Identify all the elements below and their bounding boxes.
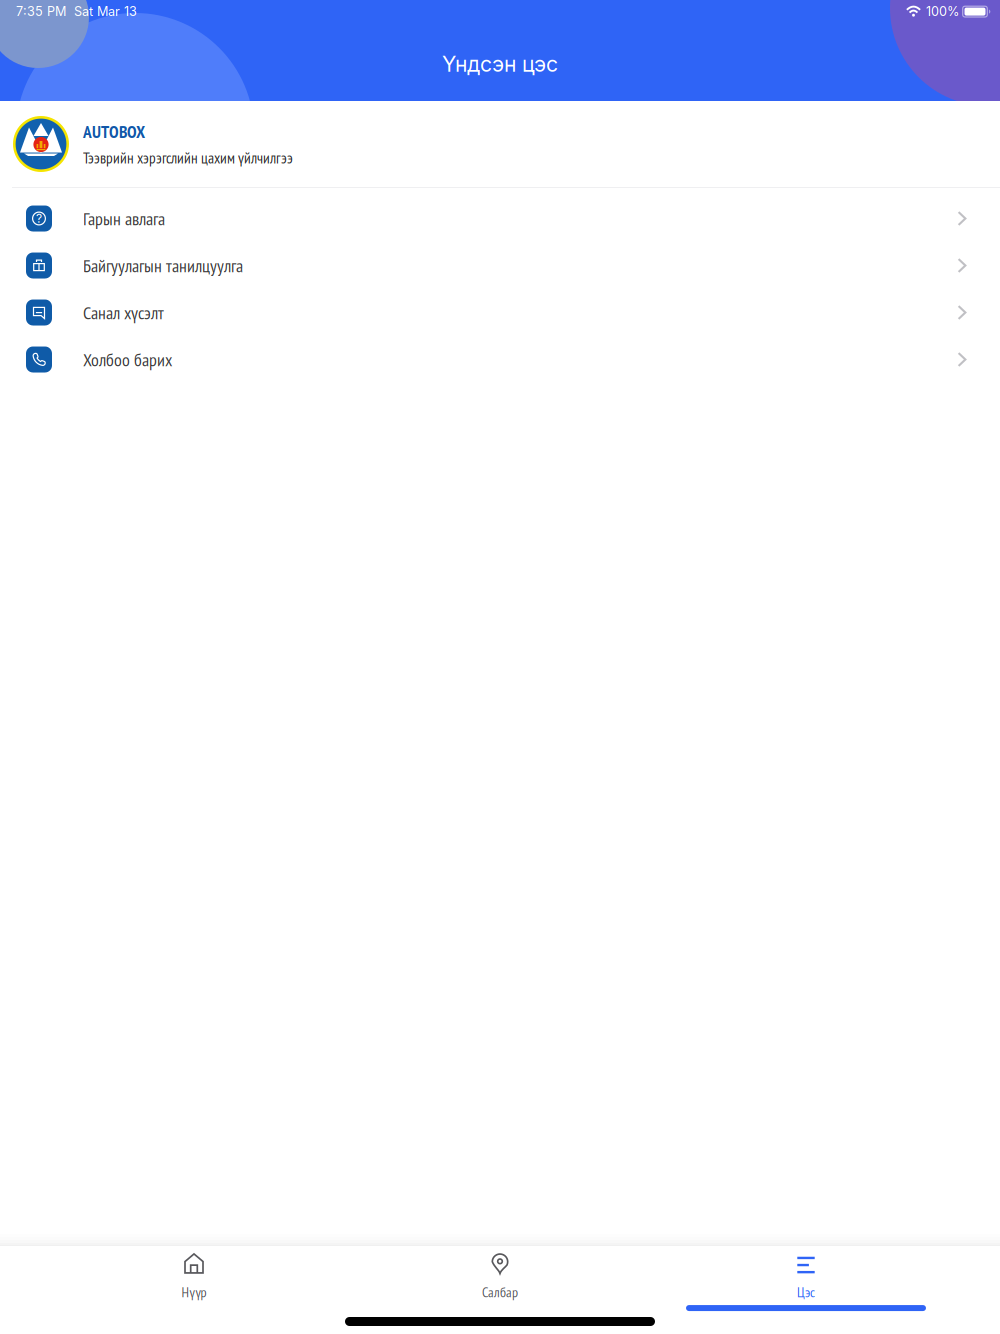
button[interactable]: Цэс	[653, 1246, 959, 1307]
button[interactable]: Санал хүсэлт	[0, 289, 1000, 336]
staticText: Sat Mar 13	[74, 4, 137, 19]
staticText: 7:35 PM	[16, 4, 66, 19]
staticText: Байгуулагын танилцуулга	[83, 254, 243, 277]
staticText: AUTOBOX	[83, 120, 145, 143]
staticText: Үндсэн цэс	[442, 51, 558, 77]
staticText: Санал хүсэлт	[83, 301, 164, 324]
staticText: Салбар	[482, 1283, 518, 1301]
button[interactable]: Нүүр	[41, 1246, 347, 1307]
staticText: Нүүр	[181, 1283, 206, 1301]
button[interactable]: Холбоо барих	[0, 336, 1000, 383]
button[interactable]: Гарын авлага	[0, 195, 1000, 242]
staticText: Гарын авлага	[83, 207, 165, 230]
button[interactable]: Салбар	[347, 1246, 653, 1307]
staticText: Холбоо барих	[83, 348, 172, 371]
button[interactable]: Байгуулагын танилцуулга	[0, 242, 1000, 289]
staticText: ?	[36, 211, 42, 226]
staticText: 100%	[926, 4, 959, 19]
staticText: Тээврийн хэрэгслийн цахим үйлчилгээ	[83, 148, 293, 168]
staticText: Цэс	[797, 1283, 815, 1301]
